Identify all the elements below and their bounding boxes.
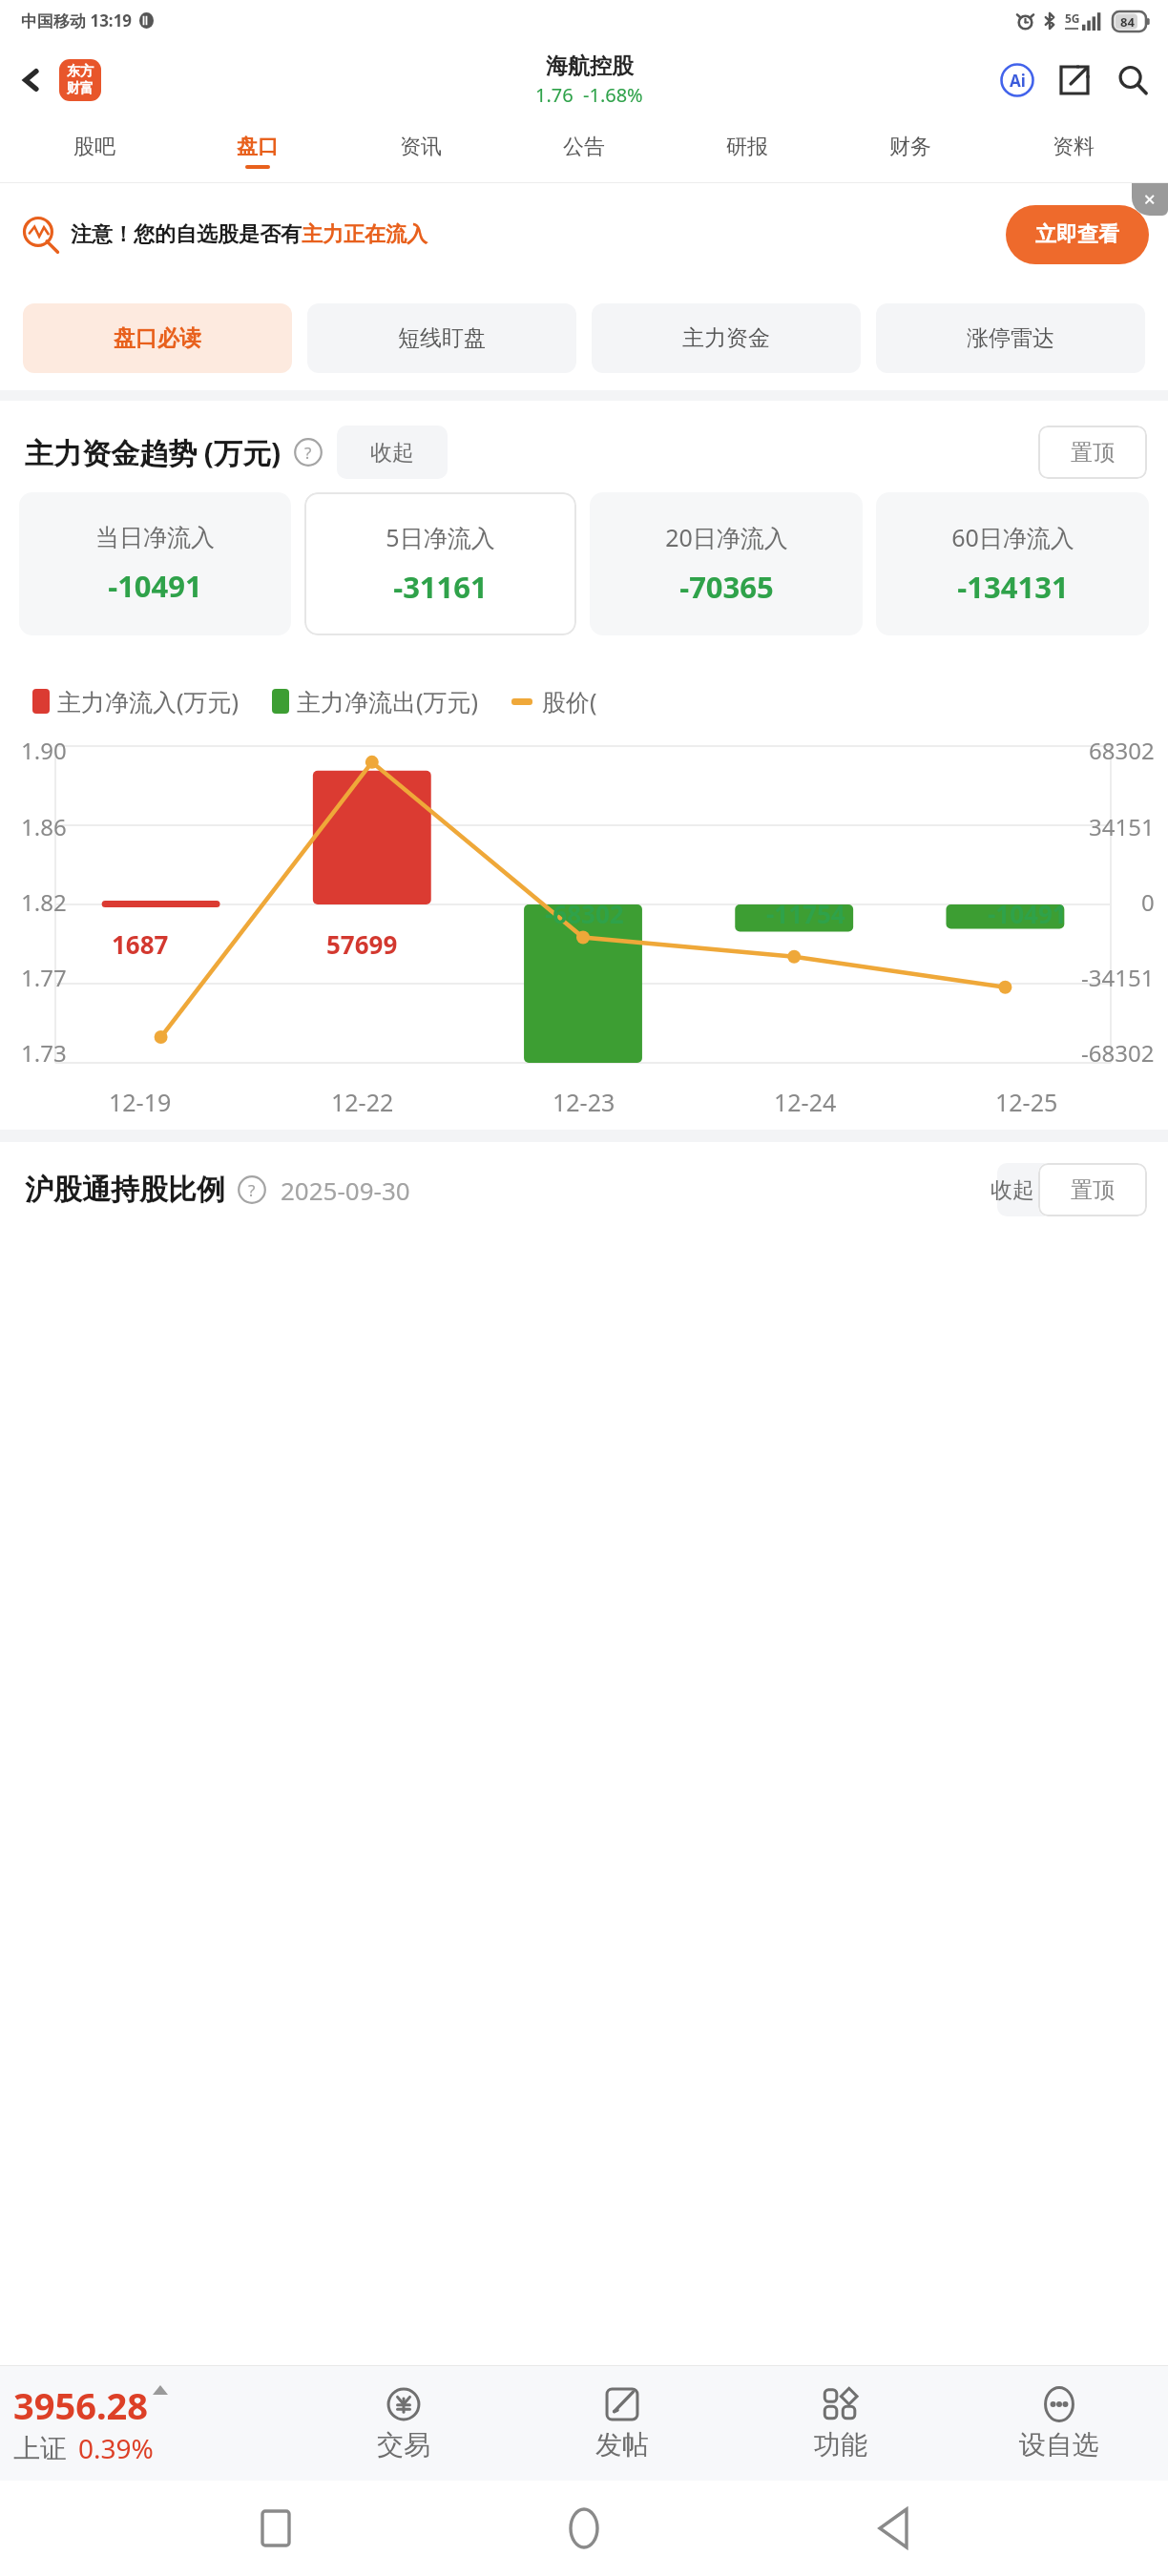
button[interactable]: 公告 [502, 119, 665, 182]
button[interactable]: 股吧 [13, 119, 176, 182]
staticText: 2025-09-30 [281, 1174, 410, 1207]
staticText: -10491 [988, 897, 1067, 930]
staticText: 财务 [889, 134, 931, 160]
staticText: -31161 [393, 567, 488, 607]
staticText: 1.90 [21, 735, 67, 766]
staticText: 主力资金 [682, 324, 770, 352]
staticText: 东方 [67, 63, 94, 80]
button[interactable]: 收起 [337, 426, 448, 479]
button[interactable]: 资料 [991, 119, 1155, 182]
staticText: 研报 [726, 134, 768, 160]
staticText: 收起 [991, 1176, 1034, 1204]
staticText: 设自选 [1019, 2428, 1099, 2462]
staticText: -1.68% [583, 82, 643, 108]
staticText: 股吧 [73, 134, 115, 160]
staticText: 68302 [1089, 735, 1155, 766]
button[interactable]: 研报 [665, 119, 828, 182]
button[interactable]: Back [860, 2495, 927, 2562]
staticText: 当日净流入 [95, 523, 215, 552]
staticText: 1.76 [535, 82, 574, 108]
staticText: 股价( [542, 685, 597, 717]
button[interactable]: Search [1111, 58, 1155, 102]
button[interactable]: 盘口必读 [23, 303, 292, 373]
staticText: 置顶 [1071, 439, 1115, 467]
staticText: 收起 [370, 439, 414, 467]
button[interactable]: 功能 [731, 2366, 949, 2481]
button[interactable]: 60日净流入 [876, 492, 1149, 635]
staticText: 0.39% [78, 2430, 154, 2466]
button[interactable]: Share [1053, 59, 1095, 101]
button[interactable]: Close banner [1132, 183, 1168, 216]
staticText: 1.86 [21, 811, 67, 842]
staticText: 沪股通持股比例 [25, 1172, 225, 1208]
staticText: 20日净流入 [665, 521, 788, 553]
button[interactable]: 短线盯盘 [307, 303, 576, 373]
button[interactable]: 交易 [294, 2366, 512, 2481]
staticText: 主力正在流入 [302, 221, 428, 248]
staticText: 3956.28 [13, 2380, 149, 2430]
staticText: 0 [1141, 886, 1155, 918]
staticText: 主力资金趋势 (万元) [25, 433, 282, 472]
staticText: 1.73 [21, 1037, 67, 1069]
staticText: 盘口必读 [114, 324, 201, 352]
button[interactable]: 发帖 [512, 2366, 731, 2481]
staticText: 12-23 [553, 1086, 615, 1118]
button[interactable]: 资讯 [339, 119, 502, 182]
staticText: 57699 [326, 927, 398, 961]
staticText: 资料 [1053, 134, 1095, 160]
staticText: 发帖 [595, 2428, 649, 2462]
staticText: 84 [1120, 13, 1135, 31]
staticText: 中国移动 13:19 [21, 10, 133, 31]
staticText: -10491 [108, 566, 202, 606]
staticText: 60日净流入 [951, 521, 1074, 553]
staticText: 12-24 [774, 1086, 837, 1118]
button[interactable]: 当日净流入 [19, 492, 291, 635]
staticText: 海航控股 [546, 52, 634, 80]
button[interactable]: Help [237, 1174, 267, 1205]
button[interactable]: 3956.28 [0, 2366, 294, 2481]
button[interactable]: 20日净流入 [590, 492, 863, 635]
button[interactable] [997, 1163, 1140, 1216]
staticText: 盘口 [237, 134, 279, 160]
staticText: 5G [1065, 10, 1080, 26]
button[interactable]: Help [293, 437, 323, 467]
staticText: 注意！您的自选股是否有 [71, 221, 302, 248]
staticText: 涨停雷达 [967, 324, 1054, 352]
staticText: 1.77 [21, 962, 67, 993]
staticText: -11754 [766, 897, 845, 930]
button[interactable]: East Money [59, 59, 101, 101]
button[interactable]: 盘口 [176, 119, 339, 182]
button[interactable]: 立即查看 [1006, 205, 1149, 264]
staticText: 主力净流出(万元) [297, 685, 479, 717]
staticText: ? [304, 442, 312, 464]
button[interactable]: 置顶 [1038, 1163, 1147, 1216]
staticText: 主力净流入(万元) [57, 685, 240, 717]
button[interactable]: Back [10, 58, 53, 102]
staticText: 12-22 [331, 1086, 394, 1118]
button[interactable]: 财务 [828, 119, 991, 182]
button[interactable]: 涨停雷达 [876, 303, 1145, 373]
staticText: 资讯 [400, 134, 442, 160]
button[interactable]: 置顶 [1038, 426, 1147, 479]
staticText: -70365 [679, 567, 774, 607]
staticText: -68302 [545, 897, 624, 930]
staticText: ? [248, 1179, 256, 1201]
button[interactable]: Home [551, 2495, 617, 2562]
button[interactable]: 设自选 [949, 2366, 1168, 2481]
staticText: 5日净流入 [386, 521, 495, 553]
staticText: Ai [1010, 70, 1026, 92]
staticText: ✕ [1143, 191, 1157, 209]
staticText: 12-25 [995, 1086, 1058, 1118]
button[interactable]: 5日净流入 [304, 492, 576, 635]
staticText: 置顶 [1071, 1176, 1115, 1204]
button[interactable]: AI assistant [996, 59, 1038, 101]
staticText: 公告 [563, 134, 605, 160]
staticText: 1.82 [21, 886, 67, 918]
staticText: 立即查看 [1035, 221, 1119, 248]
staticText: 1687 [112, 927, 169, 961]
staticText: 功能 [814, 2428, 867, 2462]
button[interactable]: 主力资金 [592, 303, 861, 373]
staticText: 12-19 [109, 1086, 172, 1118]
button[interactable]: Recents [242, 2495, 309, 2562]
staticText: 短线盯盘 [398, 324, 486, 352]
